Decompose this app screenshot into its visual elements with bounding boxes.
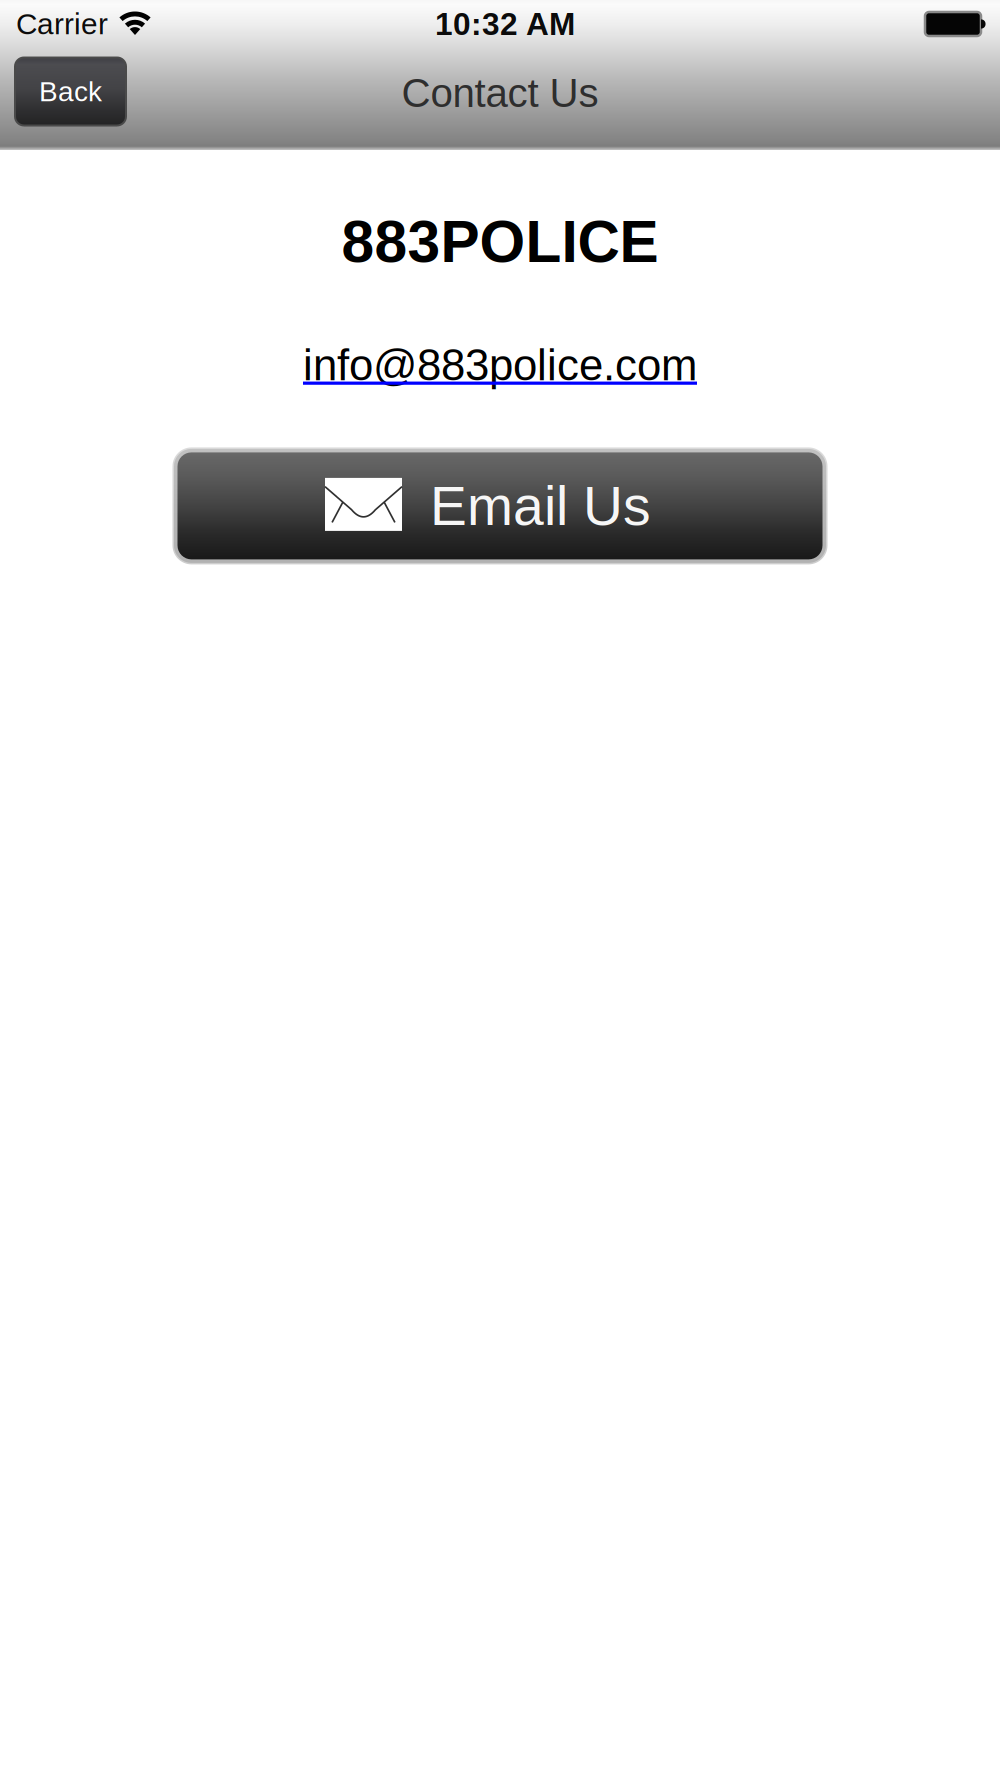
staticText: Back xyxy=(39,76,102,107)
staticText: Contact Us xyxy=(401,70,598,115)
button[interactable]: Email Us xyxy=(172,447,827,564)
staticText: 883POLICE xyxy=(341,209,658,274)
staticText: Carrier xyxy=(16,7,108,41)
staticText: info@883police.com xyxy=(303,340,697,389)
button[interactable]: info@883police.com xyxy=(303,340,697,389)
button[interactable]: Back xyxy=(15,57,126,125)
staticText: 10:32 AM xyxy=(435,6,575,42)
staticText: Email Us xyxy=(430,475,651,537)
